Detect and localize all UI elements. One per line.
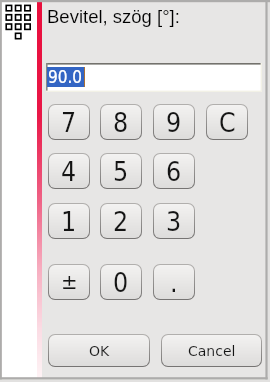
- staticText: .: [170, 267, 178, 298]
- button[interactable]: 7: [48, 104, 90, 140]
- staticText: OK: [89, 343, 110, 359]
- button[interactable]: .: [153, 264, 195, 300]
- button[interactable]: ±: [48, 264, 90, 300]
- button[interactable]: 4: [48, 153, 90, 189]
- staticText: 1: [61, 206, 77, 237]
- button[interactable]: 9: [153, 104, 195, 140]
- staticText: ±: [61, 269, 78, 295]
- staticText: 90.0: [48, 67, 83, 87]
- button[interactable]: 90.0: [46, 63, 262, 92]
- staticText: 8: [113, 107, 129, 138]
- button[interactable]: C: [206, 104, 248, 140]
- staticText: 6: [166, 156, 182, 187]
- button[interactable]: 2: [100, 203, 142, 239]
- staticText: 4: [61, 156, 77, 187]
- button[interactable]: 3: [153, 203, 195, 239]
- button[interactable]: 8: [100, 104, 142, 140]
- staticText: 5: [113, 156, 129, 187]
- button[interactable]: OK: [48, 334, 150, 367]
- staticText: Cancel: [188, 343, 236, 359]
- staticText: 3: [166, 206, 182, 237]
- button[interactable]: 1: [48, 203, 90, 239]
- button[interactable]: 0: [100, 264, 142, 300]
- staticText: 9: [166, 107, 182, 138]
- staticText: Bevitel, szög [°]:: [47, 6, 180, 27]
- staticText: C: [219, 107, 236, 138]
- staticText: 2: [113, 206, 129, 237]
- staticText: 7: [61, 107, 77, 138]
- button[interactable]: 6: [153, 153, 195, 189]
- button[interactable]: Cancel: [161, 334, 262, 367]
- button[interactable]: 5: [100, 153, 142, 189]
- staticText: 0: [113, 267, 129, 298]
